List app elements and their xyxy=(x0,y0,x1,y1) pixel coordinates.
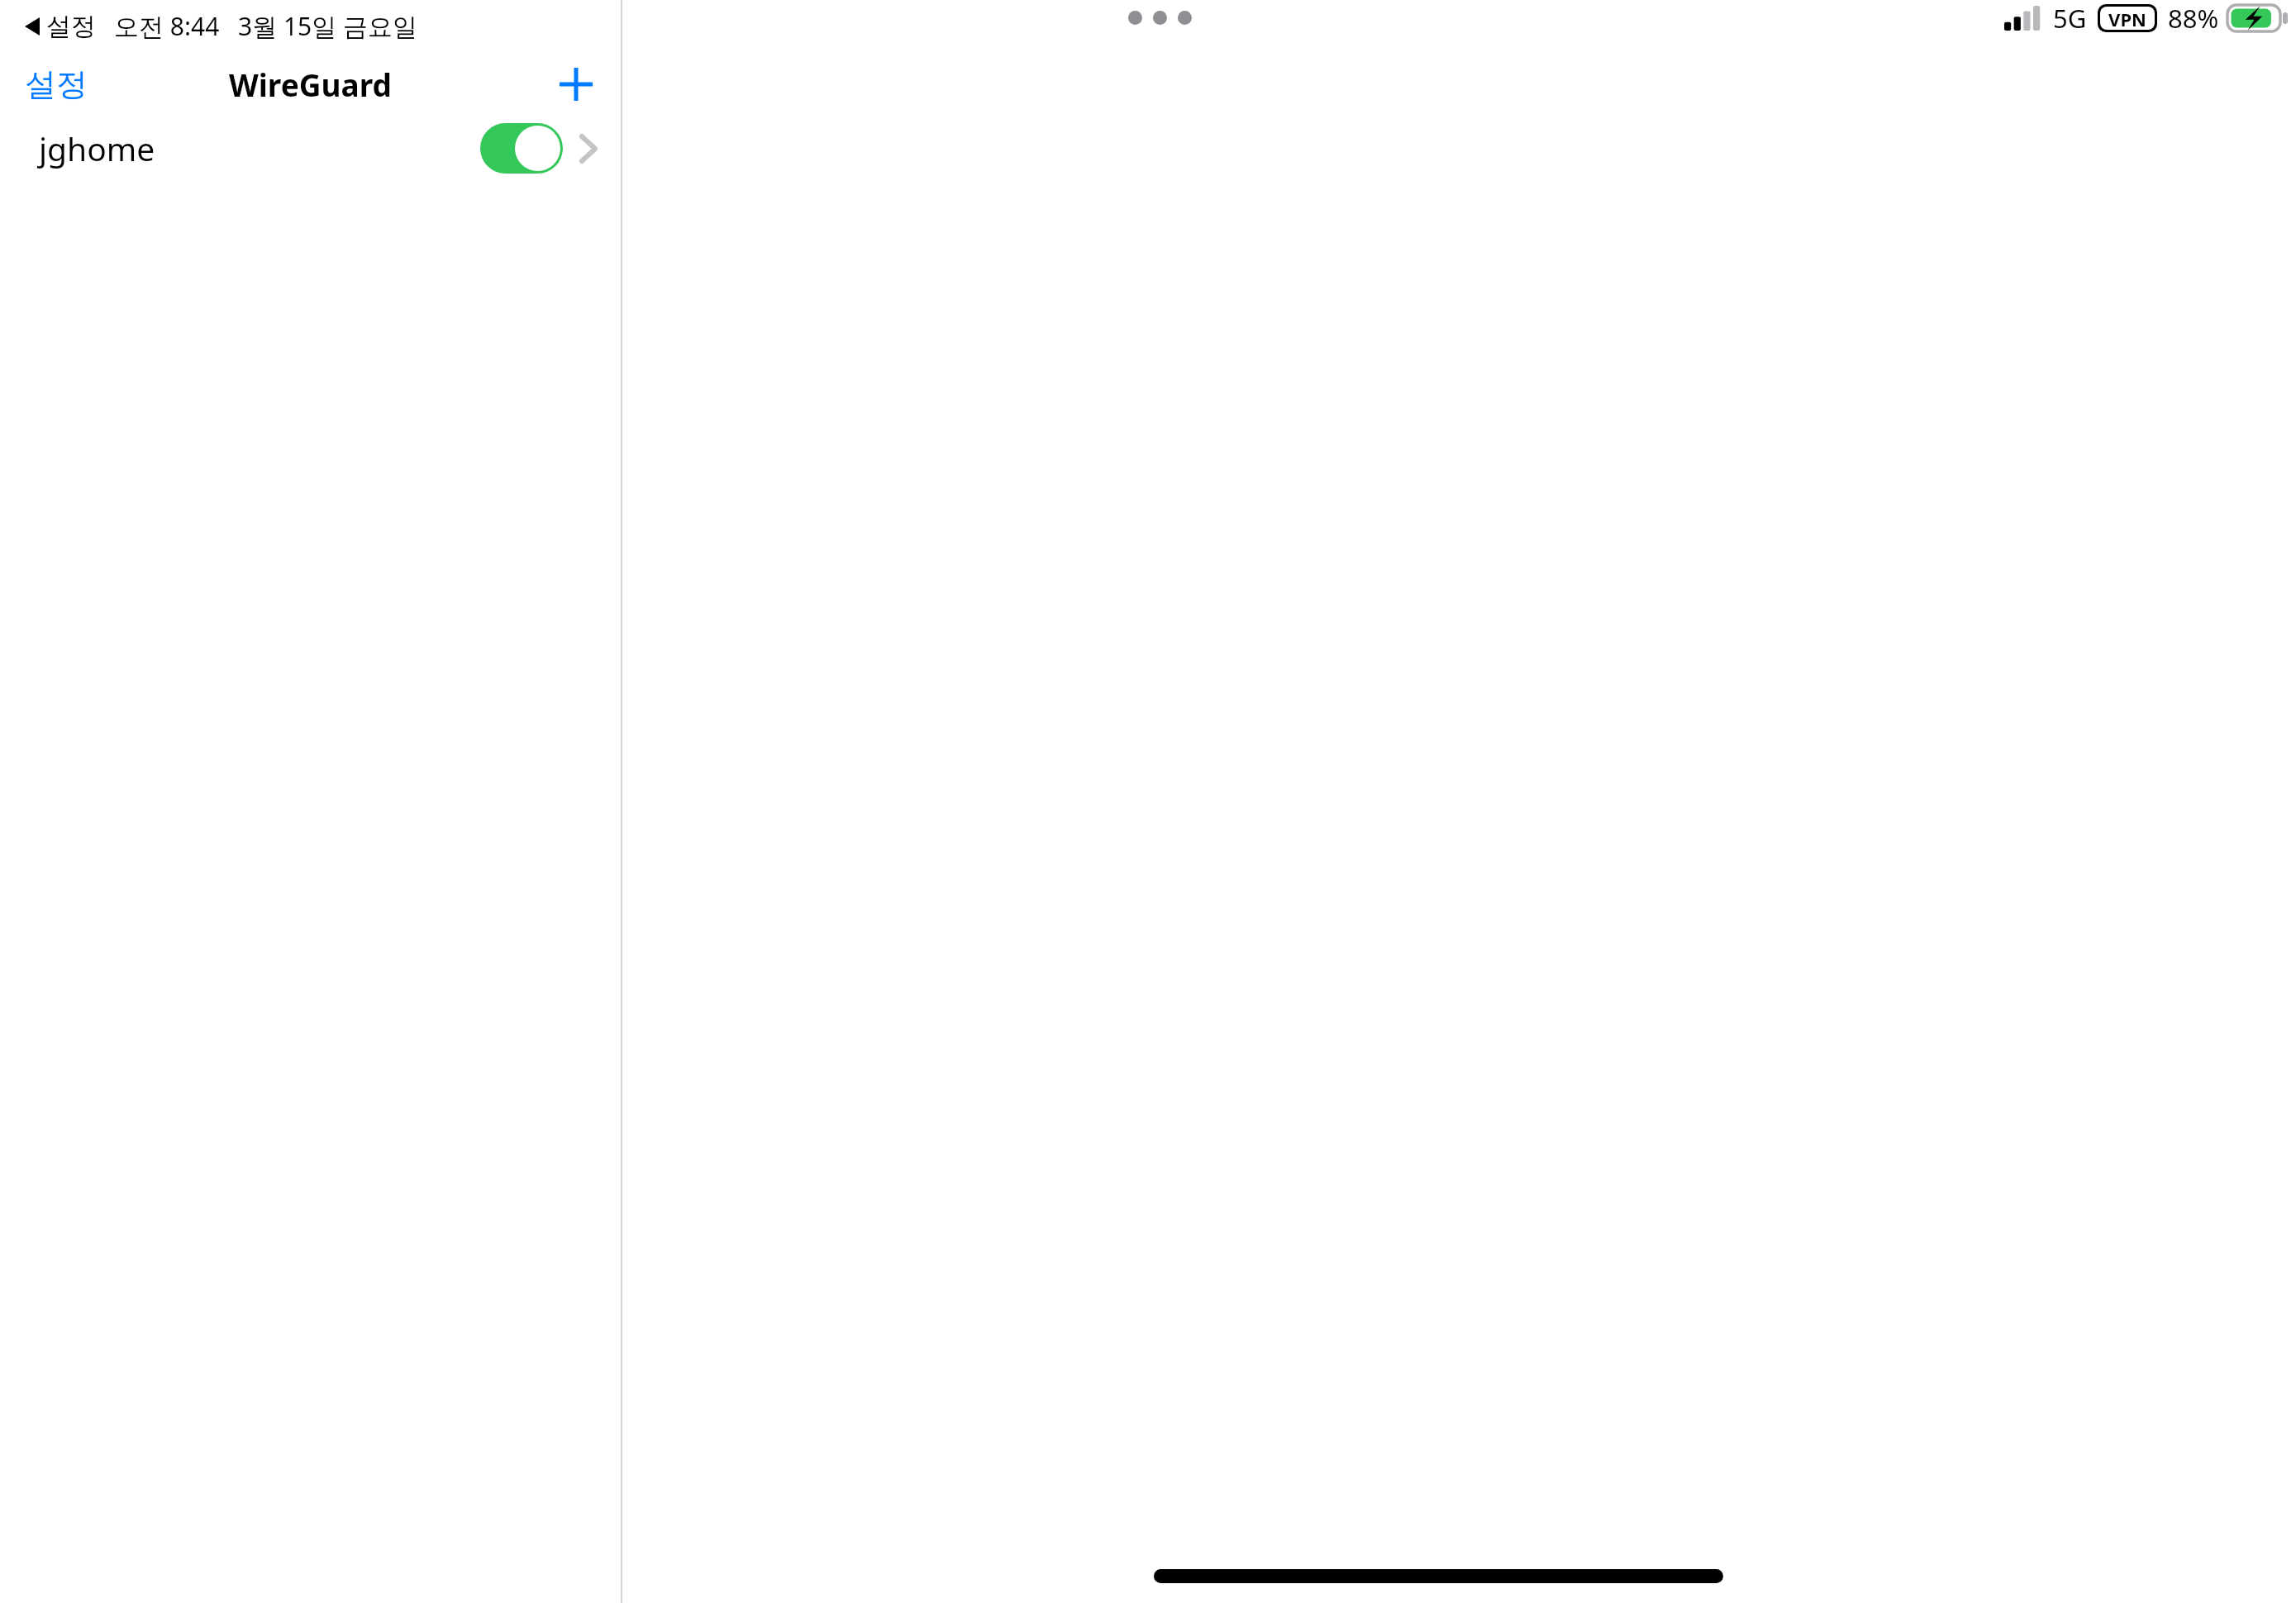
staticText: 설정 xyxy=(46,11,96,42)
staticText: 5G xyxy=(2053,1,2087,36)
button[interactable]: 설정 xyxy=(12,58,101,111)
button[interactable]: Multitasking controls xyxy=(1128,11,1192,25)
button[interactable]: Add tunnel xyxy=(550,58,603,111)
staticText: 3월 15일 금요일 xyxy=(238,9,418,43)
button[interactable]: jghome xyxy=(0,117,621,179)
staticText: jghome xyxy=(39,126,155,170)
staticText: 오전 8:44 xyxy=(114,9,220,43)
staticText: WireGuard xyxy=(229,64,392,105)
staticText: VPN xyxy=(2108,7,2146,30)
staticText: 88% xyxy=(2168,1,2219,36)
button[interactable]: Toggle tunnel jghome xyxy=(480,123,563,174)
staticText: 설정 xyxy=(25,64,88,104)
